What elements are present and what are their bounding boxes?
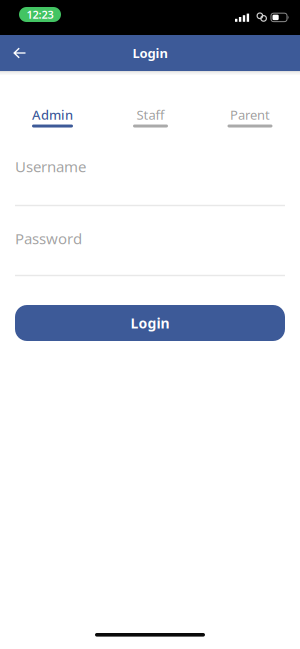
button[interactable]: Password <box>15 228 285 276</box>
staticText: Login <box>130 314 169 332</box>
staticText: Password <box>15 228 82 248</box>
button[interactable] <box>0 35 34 71</box>
button[interactable]: Staff <box>100 105 200 128</box>
staticText: 12:23 <box>26 7 53 22</box>
staticText: Parent <box>230 106 270 123</box>
staticText: Staff <box>136 106 164 123</box>
staticText: Username <box>15 156 86 176</box>
button[interactable]: Admin <box>0 105 100 128</box>
button[interactable]: Username <box>15 156 285 206</box>
button[interactable]: Parent <box>200 105 300 128</box>
staticText: Login <box>132 44 167 62</box>
button[interactable]: Login <box>15 305 285 341</box>
staticText: Admin <box>32 106 73 123</box>
